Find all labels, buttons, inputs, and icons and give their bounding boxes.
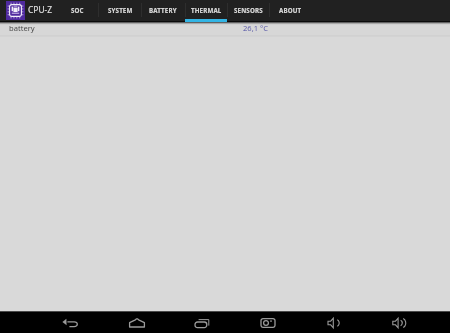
button[interactable]: Home <box>121 311 153 333</box>
staticText: BATTERY <box>149 6 177 14</box>
button[interactable]: SENSORS <box>227 0 269 22</box>
button[interactable]: battery <box>0 22 450 35</box>
staticText: 26,1 °C <box>243 23 269 33</box>
staticText: THERMAL <box>191 6 222 14</box>
button[interactable]: BATTERY <box>141 0 185 22</box>
staticText: CPU-Z <box>28 4 53 15</box>
button[interactable]: Recents <box>186 311 218 333</box>
staticText: battery <box>9 23 35 33</box>
button[interactable]: Screenshot <box>252 311 284 333</box>
button[interactable]: Back <box>54 311 86 333</box>
button[interactable]: Volume down <box>317 311 349 333</box>
button[interactable]: SOC <box>57 0 98 22</box>
button[interactable]: SYSTEM <box>98 0 142 22</box>
staticText: SOC <box>71 6 84 14</box>
button[interactable]: THERMAL <box>185 0 227 22</box>
staticText: ABOUT <box>279 6 302 14</box>
button[interactable]: Volume up <box>383 311 415 333</box>
button[interactable]: ABOUT <box>269 0 312 22</box>
staticText: SYSTEM <box>108 6 133 14</box>
staticText: SENSORS <box>234 6 263 14</box>
